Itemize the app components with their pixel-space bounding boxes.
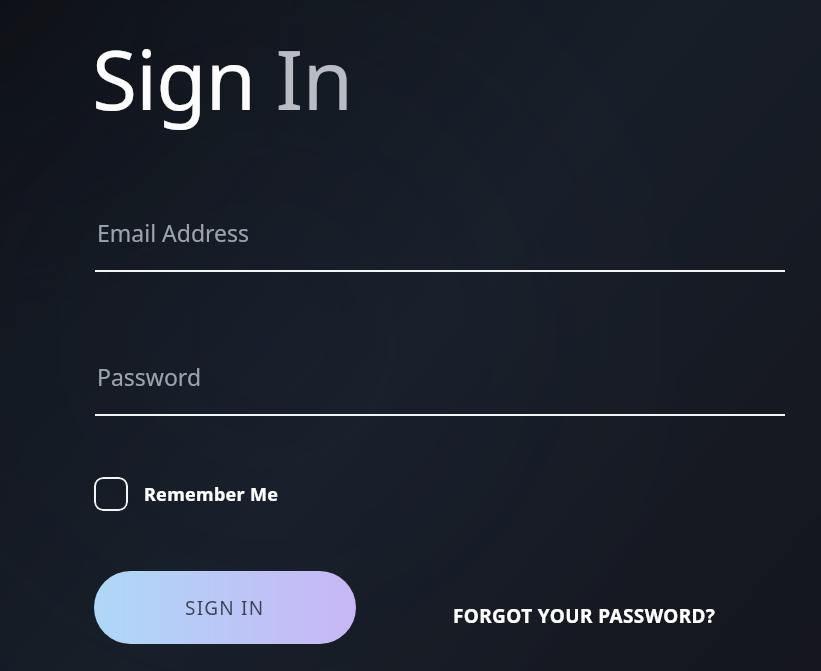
button[interactable]: Email Address [95,200,785,272]
button[interactable]: Remember Me [94,476,279,512]
staticText: Password [97,361,202,392]
staticText: Email Address [97,217,250,248]
staticText: Sign In [92,22,353,134]
staticText: SIGN IN [185,595,265,621]
button[interactable]: Password [95,344,785,416]
button[interactable]: FORGOT YOUR PASSWORD? [440,592,703,640]
staticText: Remember Me [144,482,279,507]
staticText: FORGOT YOUR PASSWORD? [453,603,716,629]
button[interactable]: SIGN IN [94,571,356,644]
